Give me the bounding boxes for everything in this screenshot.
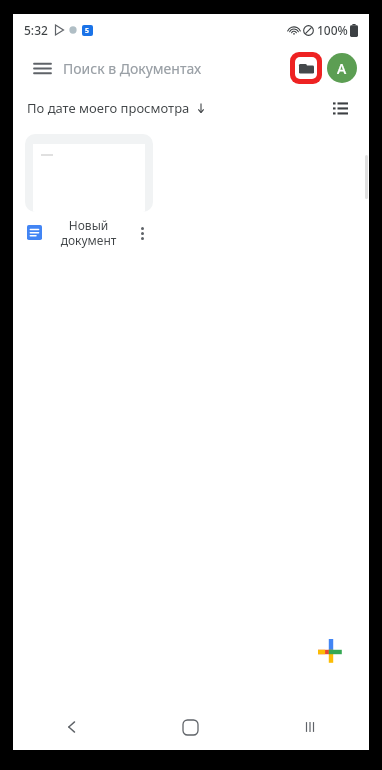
staticText: По дате моего просмотра (27, 99, 190, 117)
button[interactable]: Новый документ (25, 134, 153, 248)
button[interactable]: Open navigation menu (21, 46, 361, 90)
staticText: 5:32 (24, 22, 48, 38)
button[interactable]: Account (327, 53, 357, 83)
button[interactable]: Home (131, 704, 250, 750)
button[interactable]: Create new document (305, 626, 357, 678)
button[interactable]: Recent apps (250, 704, 369, 750)
staticText: 5 (85, 26, 90, 36)
staticText: 100% (317, 22, 348, 38)
staticText: Поиск в Документах (63, 59, 202, 78)
button[interactable]: Open navigation menu (21, 47, 63, 89)
button[interactable]: More options (131, 222, 153, 244)
button[interactable]: По дате моего просмотра (27, 99, 207, 117)
staticText: A (337, 59, 347, 78)
staticText: Новый документ (46, 217, 131, 248)
button[interactable]: Folders (287, 49, 325, 87)
button[interactable]: Switch to list view (325, 93, 355, 123)
button[interactable]: Back (13, 704, 131, 750)
